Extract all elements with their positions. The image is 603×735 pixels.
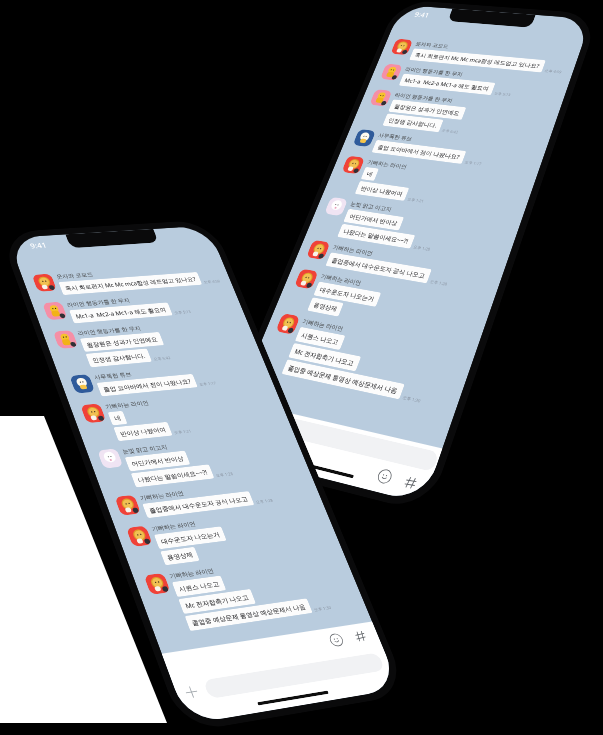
staticText: 기뻐하는 라이언 [150,519,197,533]
staticText: 사무폭한 튜브 [377,131,414,142]
staticText: 용영상제 [166,550,194,562]
button[interactable]: 기뻐하는 라이언 [126,504,334,569]
staticText: 눈빛 맑고 이고지 [349,200,393,213]
button[interactable]: Shortcuts [349,627,372,646]
staticText: 시퀀스 나오고 [300,330,340,346]
button[interactable]: 웃자와 코모드 [388,38,574,75]
staticText: Mc 전자합축기 나오고 [184,592,250,610]
staticText: 졸업중 예상문제 통영상 예상문제서 나옴 [190,602,307,627]
staticText: 기뻐하는 라이언 [168,566,215,580]
staticText: 웃자와 코모드 [55,271,94,280]
staticText: 오후 5:13 [493,91,511,97]
staticText: 인정샘 감사합니다. [387,116,439,129]
staticText: 오후 1:17 [198,380,217,387]
staticText: 오후 6:42 [441,128,459,135]
staticText: 웃자와 코모드 [414,40,450,50]
staticText: 라이언 행동가를 한 무지 [76,324,142,337]
button[interactable]: 기뻐하는 라이언 [304,240,499,295]
staticText: 오후 1:30 [402,394,422,404]
staticText: 오후 1:21 [407,196,425,204]
staticText: 오후 4:59 [203,278,221,284]
staticText: 오후 1:28 [215,471,234,478]
staticText: 반이상 나왔어여 [360,184,404,198]
button[interactable]: 기뻐하는 라이언 [144,549,361,635]
button[interactable]: 눈빛 맑고 이고지 [97,430,303,490]
button[interactable]: Shortcuts [399,471,423,494]
staticText: 월장원은 성과가 인연예요 [85,335,159,349]
button[interactable]: Emoji [372,464,398,489]
staticText: 눈빛 맑고 이고지 [121,443,169,455]
staticText: 오후 1:28 [429,279,448,287]
staticText: 대수운도자 나오는거 [159,530,221,546]
button[interactable] [203,652,385,699]
staticText: 오후 5:13 [173,309,192,315]
staticText: 반이상 나왔어여 [119,425,167,438]
staticText: 기뻐하는 라이언 [104,399,150,410]
staticText: 오후 4:59 [544,68,562,74]
button[interactable]: Emoji [324,630,349,650]
button[interactable]: 라이언 행동가를 한 무지 [53,316,255,369]
staticText: 졸업 요아바에서 점이 나왔나요? [102,377,193,393]
staticText: 월장원은 성과가 인연예요 [393,102,461,117]
staticText: 라이언 행동가를 한 무지 [404,65,464,78]
button[interactable]: 사무폭한 튜브 [350,129,540,173]
staticText: 오후 1:17 [464,159,482,167]
staticText: 기뻐하는 라이언 [332,243,374,257]
staticText: 사무폭한 튜브 [93,370,133,381]
staticText: 9:41 [28,240,48,251]
staticText: Mc 전자합축기 나오고 [293,347,356,368]
staticText: 오후 1:28 [412,244,431,252]
staticText: 어딘가에서 반이상 [130,454,185,468]
staticText: 나왔다는 말씀이세요~~?! [136,468,209,484]
staticText: 인정샘 감사합니다. [91,351,147,364]
staticText: 대수운도자 나오는거 [318,285,376,303]
staticText: 기뻐하는 라이언 [366,158,408,170]
button[interactable]: 기뻐하는 라이언 [285,268,488,343]
button[interactable]: 라이언 행동가를 한 무지 [361,89,555,145]
staticText: 혹시 회로편지 Mc Mc mca합성 레드업고 있나요? [64,275,197,292]
staticText: 라이언 행동가를 한 무지 [394,91,454,104]
staticText: 오후 1:28 [255,497,274,505]
staticText: 오후 1:30 [313,605,332,613]
staticText: 나왔다는 말씀이세요~~?! [342,227,410,245]
button[interactable]: 사무폭한 튜브 [69,358,267,399]
staticText: 용영상제 [312,301,338,313]
staticText: 혹시 회로편지 Mc Mc mca합성 레드업고 있나요? [414,51,541,70]
staticText: 졸업중에서 대수운도자 공식 나오고 [330,256,426,280]
staticText: 네 [113,414,122,422]
button[interactable]: 기뻐하는 라이언 [260,313,471,410]
staticText: 졸업 요아바에서 점이 나왔나요? [376,143,461,161]
staticText: Mc1-a Mc2-a Mc1-a 해도 활요여 [74,305,168,320]
button[interactable]: 눈빛 맑고 이고지 [316,197,515,264]
button[interactable]: Add attachment [179,682,204,702]
staticText: 오후 1:21 [173,428,192,435]
staticText: 시퀀스 나오고 [177,579,221,593]
button[interactable]: 기뻐하는 라이언 [80,387,285,444]
staticText: Mc1-a Mc2-a Mc1-a 해도 활요여 [403,76,491,92]
staticText: 기뻐하는 라이언 [301,317,345,333]
staticText: 졸업중 예상문제 통영상 예상문제서 나옴 [287,363,399,395]
staticText: 라이언 행동가를 한 무지 [66,296,131,308]
staticText: 어딘가에서 반이상 [348,212,399,227]
staticText: 기뻐하는 라이언 [320,272,362,287]
button[interactable]: 웃자와 코모드 [31,262,227,297]
staticText: 9:41 [413,10,431,19]
staticText: 네 [366,170,374,178]
staticText: 오후 6:42 [153,355,171,362]
button[interactable]: 기뻐하는 라이언 [114,474,316,521]
button[interactable]: 기뻐하는 라이언 [333,155,530,217]
button[interactable]: 라이언 행동가를 한 무지 [378,63,565,102]
button[interactable] [253,411,440,472]
staticText: 기뻐하는 라이언 [138,489,185,502]
button[interactable]: 라이언 행동가를 한 무지 [42,289,238,325]
staticText: 졸업중에서 대수운도자 공식 나오고 [148,494,249,515]
